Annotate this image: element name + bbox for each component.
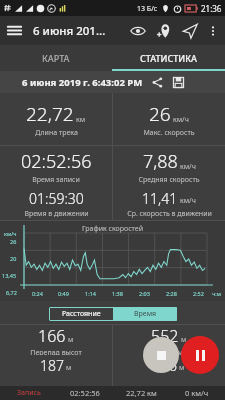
staticText: 21:36 [201,3,222,14]
staticText: 0:49 [58,290,69,297]
staticText: Время записи [32,175,80,185]
button[interactable]: График скоростей [0,221,225,301]
button[interactable]: Menu [0,16,29,45]
button[interactable]: 11,41 [113,188,225,220]
button[interactable]: Add waypoint [151,18,177,44]
button[interactable]: 02:52:56 [0,146,112,188]
staticText: 1:38 [112,290,123,297]
staticText: 6 июня 201… [33,23,106,39]
staticText: График скоростей [82,224,143,234]
staticText: Время в движении [24,209,89,219]
staticText: 6,72 [6,289,17,296]
staticText: 0 км/ч [185,388,209,398]
staticText: 996 [153,356,177,375]
button[interactable]: Pause [181,336,219,374]
staticText: 02:52:56 [70,388,100,398]
staticText: км [76,115,86,125]
staticText: 552 [151,325,179,347]
button[interactable]: Расстояние [49,307,113,321]
staticText: Расстояние [62,309,101,319]
staticText: 1:14 [85,290,96,297]
button[interactable]: 552 [113,325,225,355]
staticText: Время [134,309,157,319]
staticText: км/ч [173,115,189,125]
button[interactable]: 26 [113,93,225,145]
staticText: Ср. скорость в движении [127,209,212,219]
staticText: 6 июня 2019 г. 6:43:02 PM [22,76,143,89]
button[interactable]: Navigate [177,18,203,44]
button[interactable]: 166 [0,325,112,355]
staticText: Длина трека [35,128,78,138]
staticText: 20 [10,255,17,262]
button[interactable]: Show track [125,18,151,44]
staticText: Подъем [156,348,183,355]
button[interactable]: СТАТИСТИКА [112,45,225,71]
staticText: СТАТИСТИКА [140,52,197,64]
staticText: Перепад высот [30,348,82,355]
staticText: м [179,363,185,373]
staticText: 166 [38,325,66,347]
button[interactable]: Stop [143,337,179,373]
staticText: ч:м [212,290,221,297]
staticText: 2:03 [139,290,150,297]
button[interactable]: More options [203,21,223,41]
staticText: 2:52 [193,290,204,297]
staticText: 0:24 [32,290,43,297]
staticText: м [66,363,72,373]
button[interactable]: 22,72 [0,93,112,145]
staticText: 26 [149,101,171,127]
button[interactable]: Время [113,307,177,321]
staticText: км/ч [4,230,17,237]
staticText: 22,72 км [126,388,157,398]
button[interactable]: 7,88 [113,146,225,188]
staticText: КАРТА [42,52,70,64]
staticText: Запись [17,388,41,398]
staticText: 01:59:30 [29,189,84,208]
staticText: м [181,335,187,345]
staticText: км/ч [180,162,196,172]
button[interactable]: Save [170,74,186,90]
staticText: Макс. скорость [143,128,195,138]
staticText: 187 [40,356,64,375]
staticText: 22,72 [26,101,74,127]
button[interactable]: 01:59:30 [0,188,112,220]
staticText: 7,88 [143,149,178,174]
staticText: 2:28 [166,290,177,297]
staticText: 13,45 [2,272,17,279]
button[interactable]: 996 [113,355,225,386]
staticText: 13 Б/с [137,4,158,14]
button[interactable]: КАРТА [0,45,112,71]
staticText: м [68,335,74,345]
staticText: 26 [10,238,17,245]
button[interactable]: Share [149,74,165,90]
staticText: 02:52:56 [21,149,92,174]
staticText: 11,41 [142,189,178,208]
staticText: км/ч [180,196,196,206]
staticText: Средняя скорость [138,175,200,185]
button[interactable]: 187 [0,355,112,386]
